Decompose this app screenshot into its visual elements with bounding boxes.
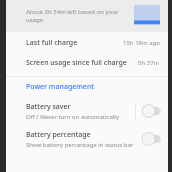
button[interactable]: Toggle [142,132,162,146]
staticText: Battery percentage [26,130,91,140]
button[interactable]: Battery percentage [26,130,134,149]
staticText: Screen usage since full charge [26,58,134,68]
staticText: About 2h 54m left based on your usage [26,8,128,24]
button[interactable]: Battery saver [26,102,129,121]
button[interactable]: Screen usage since full charge [6,53,168,73]
staticText: Show battery percentage in status bar [26,141,134,149]
staticText: Battery saver [26,102,71,112]
button[interactable]: Toggle [142,104,162,118]
staticText: Power management [26,82,94,92]
other: Battery level graph [134,5,160,27]
button[interactable]: Last full charge [6,33,168,53]
staticText: Off / Never turn on automatically [26,113,119,121]
staticText: Last full charge [26,38,119,48]
staticText: 15h 18m ago [123,39,160,47]
staticText: 5h 37m [138,59,160,67]
